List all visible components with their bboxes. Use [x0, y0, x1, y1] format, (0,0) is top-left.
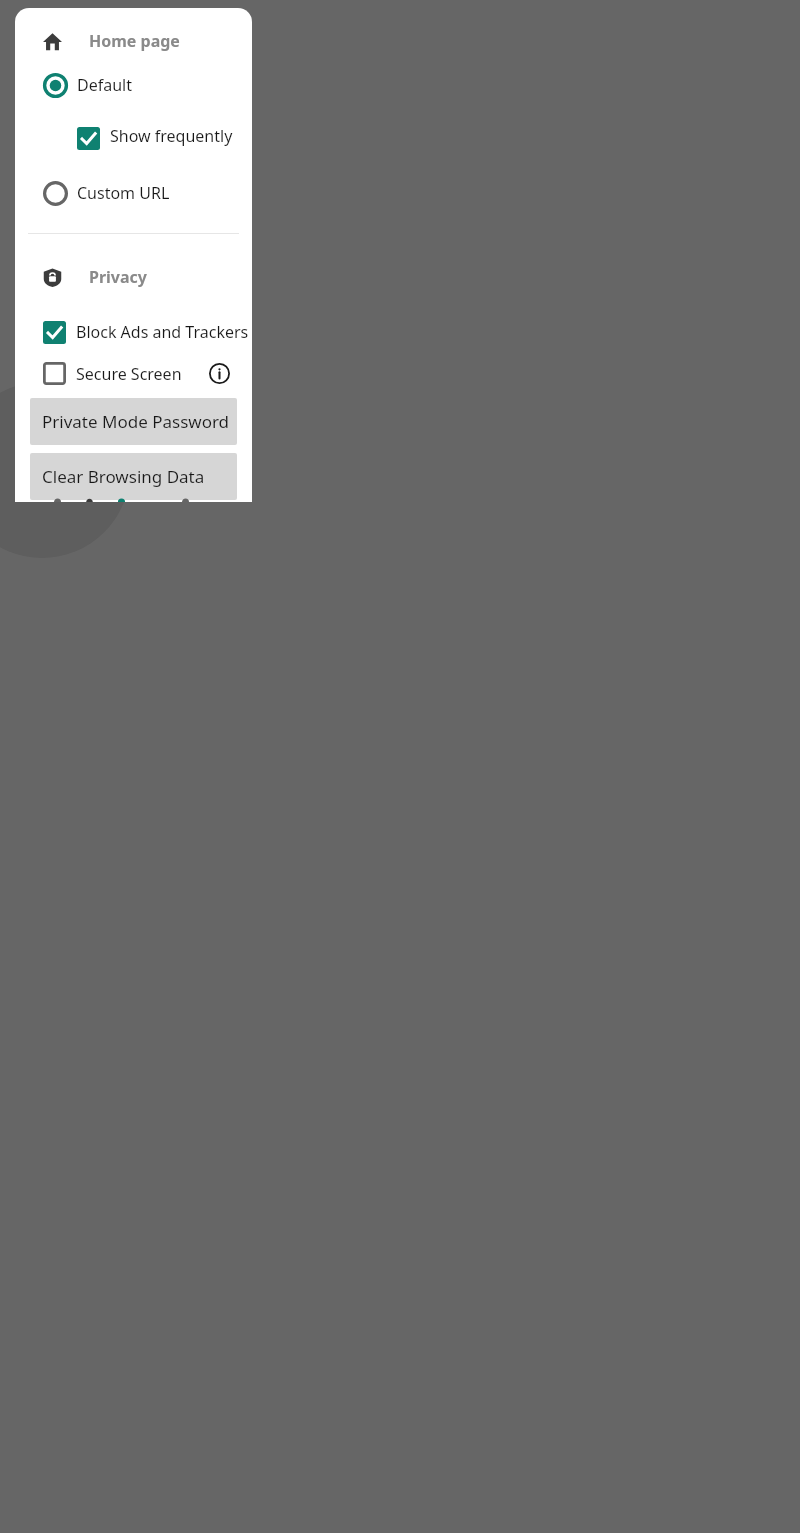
staticText: Home page [89, 30, 180, 52]
staticText: Block Ads and Trackers [76, 321, 249, 343]
button[interactable]: Secure Screen [43, 362, 206, 385]
staticText: Private Mode Password [42, 410, 230, 433]
button[interactable]: Custom URL [43, 180, 170, 206]
staticText: Privacy [89, 266, 147, 288]
button[interactable]: Default [43, 72, 132, 98]
button[interactable]: Information about Secure Screen [206, 360, 232, 386]
button[interactable]: Private Mode Password [30, 398, 237, 445]
staticText: Secure Screen [76, 363, 182, 385]
button[interactable]: Block Ads and Trackers [43, 319, 249, 345]
button[interactable]: Clear Browsing Data [30, 453, 237, 500]
staticText: Show frequently visited sites [110, 125, 252, 151]
staticText: Custom URL [77, 182, 170, 204]
staticText: Default [77, 74, 132, 96]
staticText: Clear Browsing Data [42, 465, 205, 488]
button[interactable]: Show frequently visited sites [77, 125, 252, 151]
